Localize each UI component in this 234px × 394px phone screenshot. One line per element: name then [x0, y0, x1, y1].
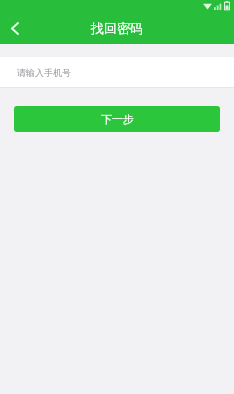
button[interactable]: 请输入手机号 — [0, 57, 234, 87]
button[interactable]: 下一步 — [14, 106, 220, 132]
staticText: 找回密码 — [91, 20, 143, 36]
button[interactable]: Back — [0, 13, 30, 43]
staticText: 请输入手机号 — [17, 67, 71, 78]
staticText: 下一步 — [101, 112, 134, 126]
